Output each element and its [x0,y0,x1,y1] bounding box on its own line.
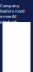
staticText: Company leaders need a new AI playbook [0,3,25,24]
